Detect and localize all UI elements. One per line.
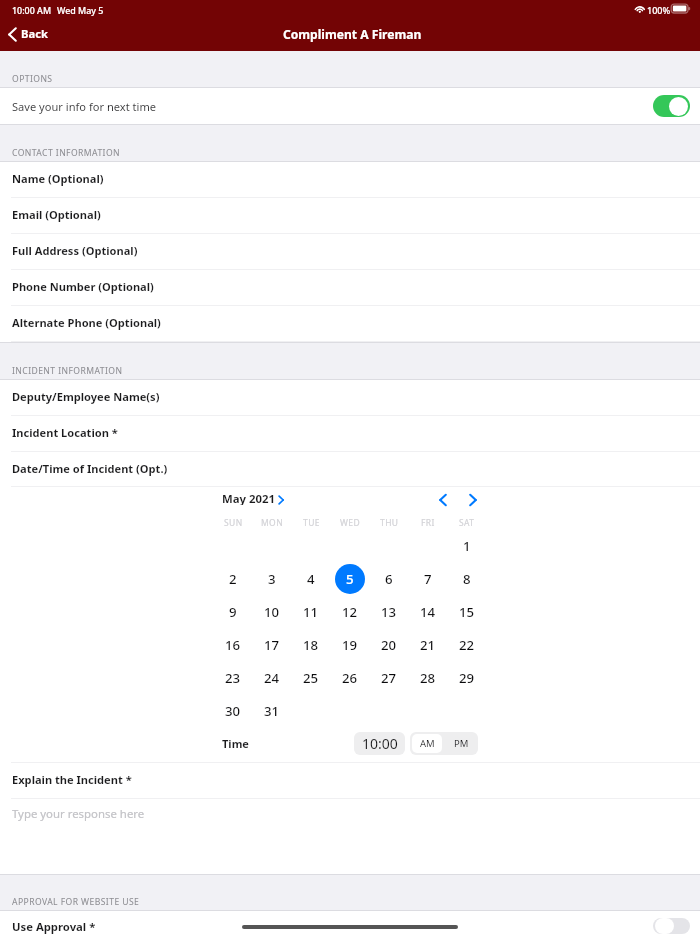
button[interactable]: Name (Optional) xyxy=(0,162,700,198)
staticText: Email (Optional) xyxy=(12,207,101,222)
staticText: MON xyxy=(261,517,284,529)
button[interactable]: 11 xyxy=(296,597,326,627)
staticText: 6 xyxy=(385,570,393,588)
button[interactable]: 23 xyxy=(218,663,248,693)
button[interactable]: 16 xyxy=(218,630,248,660)
button[interactable]: Full Address (Optional) xyxy=(0,234,700,270)
button[interactable]: Deputy/Employee Name(s) xyxy=(0,380,700,416)
staticText: 2 xyxy=(229,570,237,588)
staticText: 31 xyxy=(264,702,280,720)
staticText: 29 xyxy=(459,669,475,687)
staticText: 8 xyxy=(463,570,471,588)
staticText: APPROVAL FOR WEBSITE USE xyxy=(12,896,140,908)
button[interactable]: 7 xyxy=(413,564,443,594)
staticText: May 2021 xyxy=(222,491,276,505)
staticText: 28 xyxy=(420,669,436,687)
staticText: Back xyxy=(21,26,48,41)
button[interactable]: Date/Time of Incident (Opt.) xyxy=(0,452,700,487)
staticText: 11 xyxy=(303,603,319,621)
button[interactable]: 12 xyxy=(335,597,365,627)
staticText: 24 xyxy=(264,669,280,687)
button[interactable]: Type your response here xyxy=(0,799,700,874)
staticText: Explain the Incident * xyxy=(12,772,132,787)
staticText: 17 xyxy=(264,636,280,654)
button[interactable]: 18 xyxy=(296,630,326,660)
button[interactable]: Switch on xyxy=(653,95,690,117)
staticText: Use Approval * xyxy=(12,919,96,934)
button[interactable]: 24 xyxy=(257,663,287,693)
staticText: 22 xyxy=(459,636,475,654)
button[interactable]: 5 xyxy=(335,564,365,594)
staticText: 18 xyxy=(303,636,319,654)
button[interactable]: 25 xyxy=(296,663,326,693)
button[interactable]: 10 xyxy=(257,597,287,627)
button[interactable]: 28 xyxy=(413,663,443,693)
staticText: TUE xyxy=(303,517,320,529)
button[interactable]: 13 xyxy=(374,597,404,627)
button[interactable]: 26 xyxy=(335,663,365,693)
button[interactable]: Incident Location * xyxy=(0,416,700,452)
staticText: Save your info for next time xyxy=(12,99,157,114)
button[interactable]: AM xyxy=(412,734,442,753)
button[interactable]: Next month xyxy=(463,490,483,510)
button[interactable]: 9 xyxy=(218,597,248,627)
staticText: 10:00 xyxy=(362,734,398,753)
button[interactable]: Save your info for next time xyxy=(0,88,700,124)
staticText: 16 xyxy=(225,636,241,654)
staticText: INCIDENT INFORMATION xyxy=(12,365,123,377)
staticText: 100% xyxy=(647,4,671,16)
staticText: SAT xyxy=(459,517,475,529)
staticText: Deputy/Employee Name(s) xyxy=(12,389,160,404)
staticText: 15 xyxy=(459,603,475,621)
button[interactable]: 4 xyxy=(296,564,326,594)
staticText: 25 xyxy=(303,669,319,687)
button[interactable]: 31 xyxy=(257,696,287,726)
staticText: Wed May 5 xyxy=(57,4,104,16)
button[interactable]: 27 xyxy=(374,663,404,693)
button[interactable]: 10:00 xyxy=(354,732,405,755)
button[interactable]: Previous month xyxy=(433,490,453,510)
staticText: Phone Number (Optional) xyxy=(12,279,154,294)
button[interactable]: 8 xyxy=(452,564,482,594)
button[interactable]: Alternate Phone (Optional) xyxy=(0,306,700,342)
staticText: AM xyxy=(420,737,435,750)
button[interactable]: Explain the Incident * xyxy=(0,763,700,799)
button[interactable]: Back xyxy=(8,26,48,41)
button[interactable]: Use Approval * xyxy=(0,911,700,934)
staticText: PM xyxy=(454,737,469,750)
staticText: 14 xyxy=(420,603,436,621)
button[interactable]: 21 xyxy=(413,630,443,660)
staticText: CONTACT INFORMATION xyxy=(12,147,121,159)
button[interactable]: 17 xyxy=(257,630,287,660)
button[interactable]: 1 xyxy=(452,531,482,561)
staticText: FRI xyxy=(421,517,435,529)
button[interactable]: 14 xyxy=(413,597,443,627)
button[interactable]: PM xyxy=(444,732,478,755)
staticText: THU xyxy=(380,517,399,529)
button[interactable]: 2 xyxy=(218,564,248,594)
button[interactable]: 6 xyxy=(374,564,404,594)
staticText: Time xyxy=(222,736,249,751)
button[interactable]: 29 xyxy=(452,663,482,693)
staticText: 19 xyxy=(342,636,358,654)
staticText: 10 xyxy=(264,603,280,621)
staticText: 23 xyxy=(225,669,241,687)
staticText: 4 xyxy=(307,570,315,588)
button[interactable]: Phone Number (Optional) xyxy=(0,270,700,306)
staticText: Full Address (Optional) xyxy=(12,243,138,258)
button[interactable]: May 2021 xyxy=(222,491,276,505)
button[interactable]: Switch off xyxy=(653,918,690,934)
button[interactable]: 30 xyxy=(218,696,248,726)
staticText: Incident Location * xyxy=(12,425,118,440)
button[interactable]: Email (Optional) xyxy=(0,198,700,234)
button[interactable]: 19 xyxy=(335,630,365,660)
staticText: 1 xyxy=(463,537,471,555)
staticText: Name (Optional) xyxy=(12,171,104,186)
staticText: 26 xyxy=(342,669,358,687)
staticText: 27 xyxy=(381,669,397,687)
staticText: 7 xyxy=(424,570,432,588)
button[interactable]: 3 xyxy=(257,564,287,594)
button[interactable]: 20 xyxy=(374,630,404,660)
button[interactable]: 22 xyxy=(452,630,482,660)
button[interactable]: 15 xyxy=(452,597,482,627)
